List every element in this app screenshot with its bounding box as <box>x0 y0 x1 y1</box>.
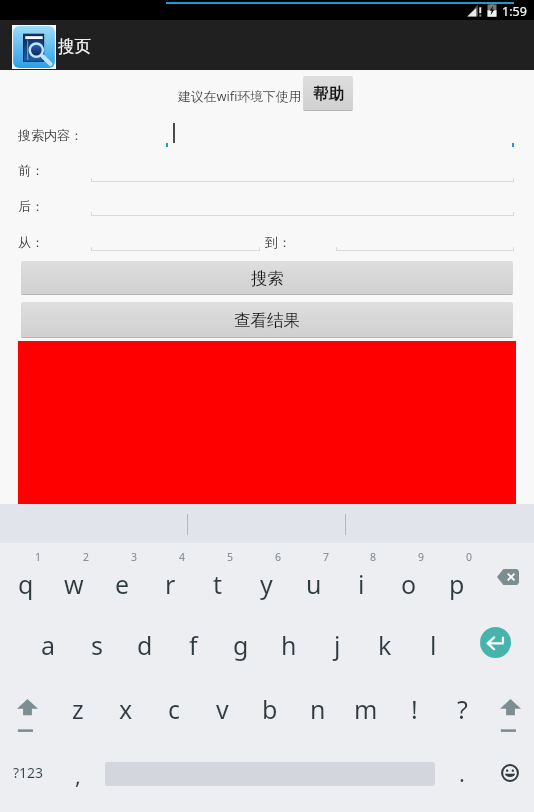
button[interactable]: Shift <box>1 684 53 748</box>
staticText: ! <box>411 692 418 726</box>
button[interactable]: 3 <box>98 548 146 612</box>
button[interactable]: 8 <box>337 548 385 612</box>
button[interactable]: 9 <box>385 548 433 612</box>
staticText: h <box>281 628 297 662</box>
button[interactable]: Enter <box>457 610 534 674</box>
staticText: a <box>41 628 56 662</box>
button[interactable]: v <box>198 677 246 741</box>
staticText: r <box>165 567 176 601</box>
staticText: 查看结果 <box>234 310 300 331</box>
staticText: 前： <box>18 162 44 178</box>
button[interactable]: l <box>409 613 457 677</box>
staticText: 9 <box>418 550 425 564</box>
staticText: . <box>459 758 465 788</box>
button[interactable]: f <box>169 613 217 677</box>
staticText: 8 <box>370 550 377 564</box>
button[interactable]: h <box>265 613 313 677</box>
button[interactable]: k <box>361 613 409 677</box>
button[interactable]: j <box>313 613 361 677</box>
staticText: y <box>260 567 273 601</box>
button[interactable]: a <box>24 613 72 677</box>
staticText: ?123 <box>13 763 44 782</box>
button[interactable]: 搜索 <box>21 261 513 295</box>
staticText: 后： <box>18 198 44 214</box>
button[interactable]: z <box>54 677 102 741</box>
button[interactable]: c <box>150 677 198 741</box>
button[interactable]: d <box>121 613 169 677</box>
staticText: g <box>233 628 249 662</box>
staticText: d <box>137 628 153 662</box>
button[interactable]: 1 <box>2 548 50 612</box>
button[interactable]: ? <box>438 677 486 741</box>
button[interactable]: g <box>217 613 265 677</box>
staticText: 0 <box>466 550 473 564</box>
staticText: 2 <box>83 550 90 564</box>
staticText: q <box>18 567 34 601</box>
button[interactable]: ! <box>390 677 438 741</box>
button[interactable]: 4 <box>146 548 194 612</box>
staticText: 4 <box>179 550 186 564</box>
staticText: 7 <box>323 550 330 564</box>
staticText: p <box>449 567 465 601</box>
staticText: 帮助 <box>313 84 344 104</box>
staticText: w <box>64 567 84 601</box>
button[interactable]: 5 <box>194 548 242 612</box>
staticText: z <box>72 692 84 726</box>
staticText: n <box>310 692 326 726</box>
staticText: 到： <box>265 234 291 250</box>
staticText: b <box>262 692 278 726</box>
button[interactable]: 7 <box>290 548 338 612</box>
staticText: t <box>213 567 223 601</box>
staticText: k <box>378 628 392 662</box>
button[interactable]: m <box>342 677 390 741</box>
button[interactable]: , <box>57 745 99 805</box>
button[interactable]: b <box>246 677 294 741</box>
staticText: 建议在wifi环境下使用 <box>178 87 302 104</box>
staticText: 1 <box>35 550 42 564</box>
button[interactable]: 查看结果 <box>21 302 513 338</box>
staticText: 搜索内容： <box>18 127 83 143</box>
button[interactable]: 帮助 <box>303 76 353 111</box>
staticText: , <box>75 760 81 790</box>
button[interactable]: 6 <box>242 548 290 612</box>
button[interactable]: s <box>73 613 121 677</box>
button[interactable]: ?123 <box>0 742 57 802</box>
button[interactable]: x <box>102 677 150 741</box>
staticText: x <box>119 692 133 726</box>
staticText: u <box>306 567 322 601</box>
staticText: s <box>91 628 103 662</box>
button[interactable]: Shift <box>484 684 534 748</box>
button[interactable]: n <box>294 677 342 741</box>
staticText: e <box>115 567 130 601</box>
staticText: 搜索 <box>251 268 284 289</box>
button[interactable]: Backspace <box>481 545 534 609</box>
staticText: j <box>334 628 341 662</box>
staticText: 3 <box>131 550 138 564</box>
staticText: c <box>168 692 181 726</box>
button[interactable]: 0 <box>433 548 481 612</box>
staticText: 从： <box>18 234 44 250</box>
staticText: i <box>358 567 365 601</box>
staticText: f <box>189 628 198 662</box>
button[interactable]: 2 <box>50 548 98 612</box>
button[interactable]: Emoji <box>486 743 534 803</box>
staticText: 6 <box>275 550 282 564</box>
staticText: 搜页 <box>58 36 91 57</box>
staticText: v <box>216 692 229 726</box>
staticText: l <box>430 628 437 662</box>
staticText: 5 <box>227 550 234 564</box>
button[interactable]: . <box>441 743 483 803</box>
staticText: o <box>401 567 417 601</box>
staticText: m <box>354 692 378 726</box>
staticText: 1:59 <box>502 3 527 20</box>
staticText: ? <box>457 692 468 726</box>
